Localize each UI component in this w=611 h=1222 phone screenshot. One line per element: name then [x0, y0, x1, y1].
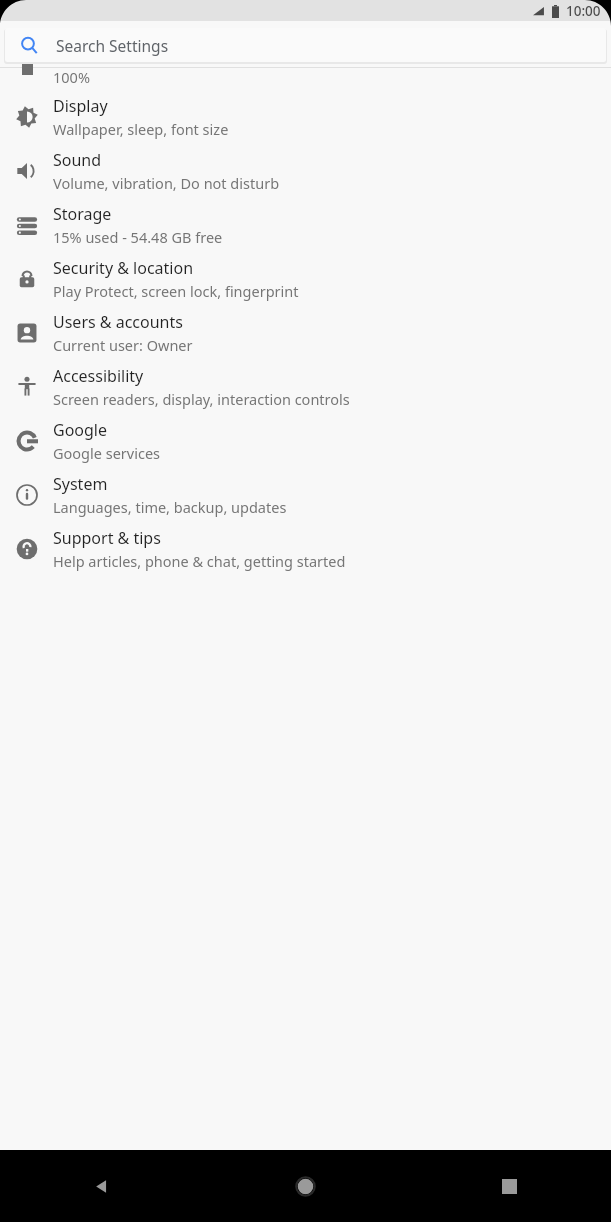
button[interactable]: System: [0, 468, 611, 522]
staticText: Current user: Owner: [53, 335, 193, 355]
staticText: 15% used - 54.48 GB free: [53, 227, 223, 247]
other: Accessibility: [16, 376, 38, 398]
button[interactable]: Support and tips: [0, 522, 611, 576]
button[interactable]: Back: [0, 1150, 203, 1222]
staticText: Volume, vibration, Do not disturb: [53, 173, 280, 193]
staticText: Security & location: [53, 257, 194, 279]
button[interactable]: Search Settings: [5, 28, 606, 62]
staticText: Google services: [53, 443, 161, 463]
staticText: Play Protect, screen lock, fingerprint: [53, 281, 299, 301]
button[interactable]: Home: [203, 1150, 407, 1222]
button[interactable]: Storage: [0, 198, 611, 252]
staticText: Search Settings: [56, 35, 169, 56]
other: Display: [16, 106, 38, 128]
staticText: Users & accounts: [53, 311, 183, 333]
staticText: Google: [53, 419, 108, 441]
other: Security and location: [16, 268, 38, 290]
staticText: Wallpaper, sleep, font size: [53, 119, 229, 139]
button[interactable]: Google: [0, 414, 611, 468]
other: System: [16, 484, 38, 506]
other: Support and tips: [16, 538, 38, 560]
button[interactable]: 100%: [0, 68, 611, 90]
button[interactable]: Security and location: [0, 252, 611, 306]
staticText: Support & tips: [53, 527, 161, 549]
other: Google: [16, 430, 38, 452]
button[interactable]: Display: [0, 90, 611, 144]
staticText: Languages, time, backup, updates: [53, 497, 287, 517]
staticText: 100%: [53, 67, 90, 87]
button[interactable]: Sound: [0, 144, 611, 198]
staticText: Screen readers, display, interaction con…: [53, 389, 350, 409]
staticText: Accessibility: [53, 365, 144, 387]
other: Storage: [16, 214, 38, 236]
other: Users and accounts: [16, 322, 38, 344]
button[interactable]: Users and accounts: [0, 306, 611, 360]
staticText: Storage: [53, 203, 112, 225]
staticText: Help articles, phone & chat, getting sta…: [53, 551, 346, 571]
staticText: Sound: [53, 149, 102, 171]
staticText: 10:00: [566, 2, 601, 20]
button[interactable]: Recent apps: [407, 1150, 611, 1222]
staticText: Display: [53, 95, 108, 117]
staticText: System: [53, 473, 108, 495]
button[interactable]: Accessibility: [0, 360, 611, 414]
other: Sound: [16, 160, 38, 182]
